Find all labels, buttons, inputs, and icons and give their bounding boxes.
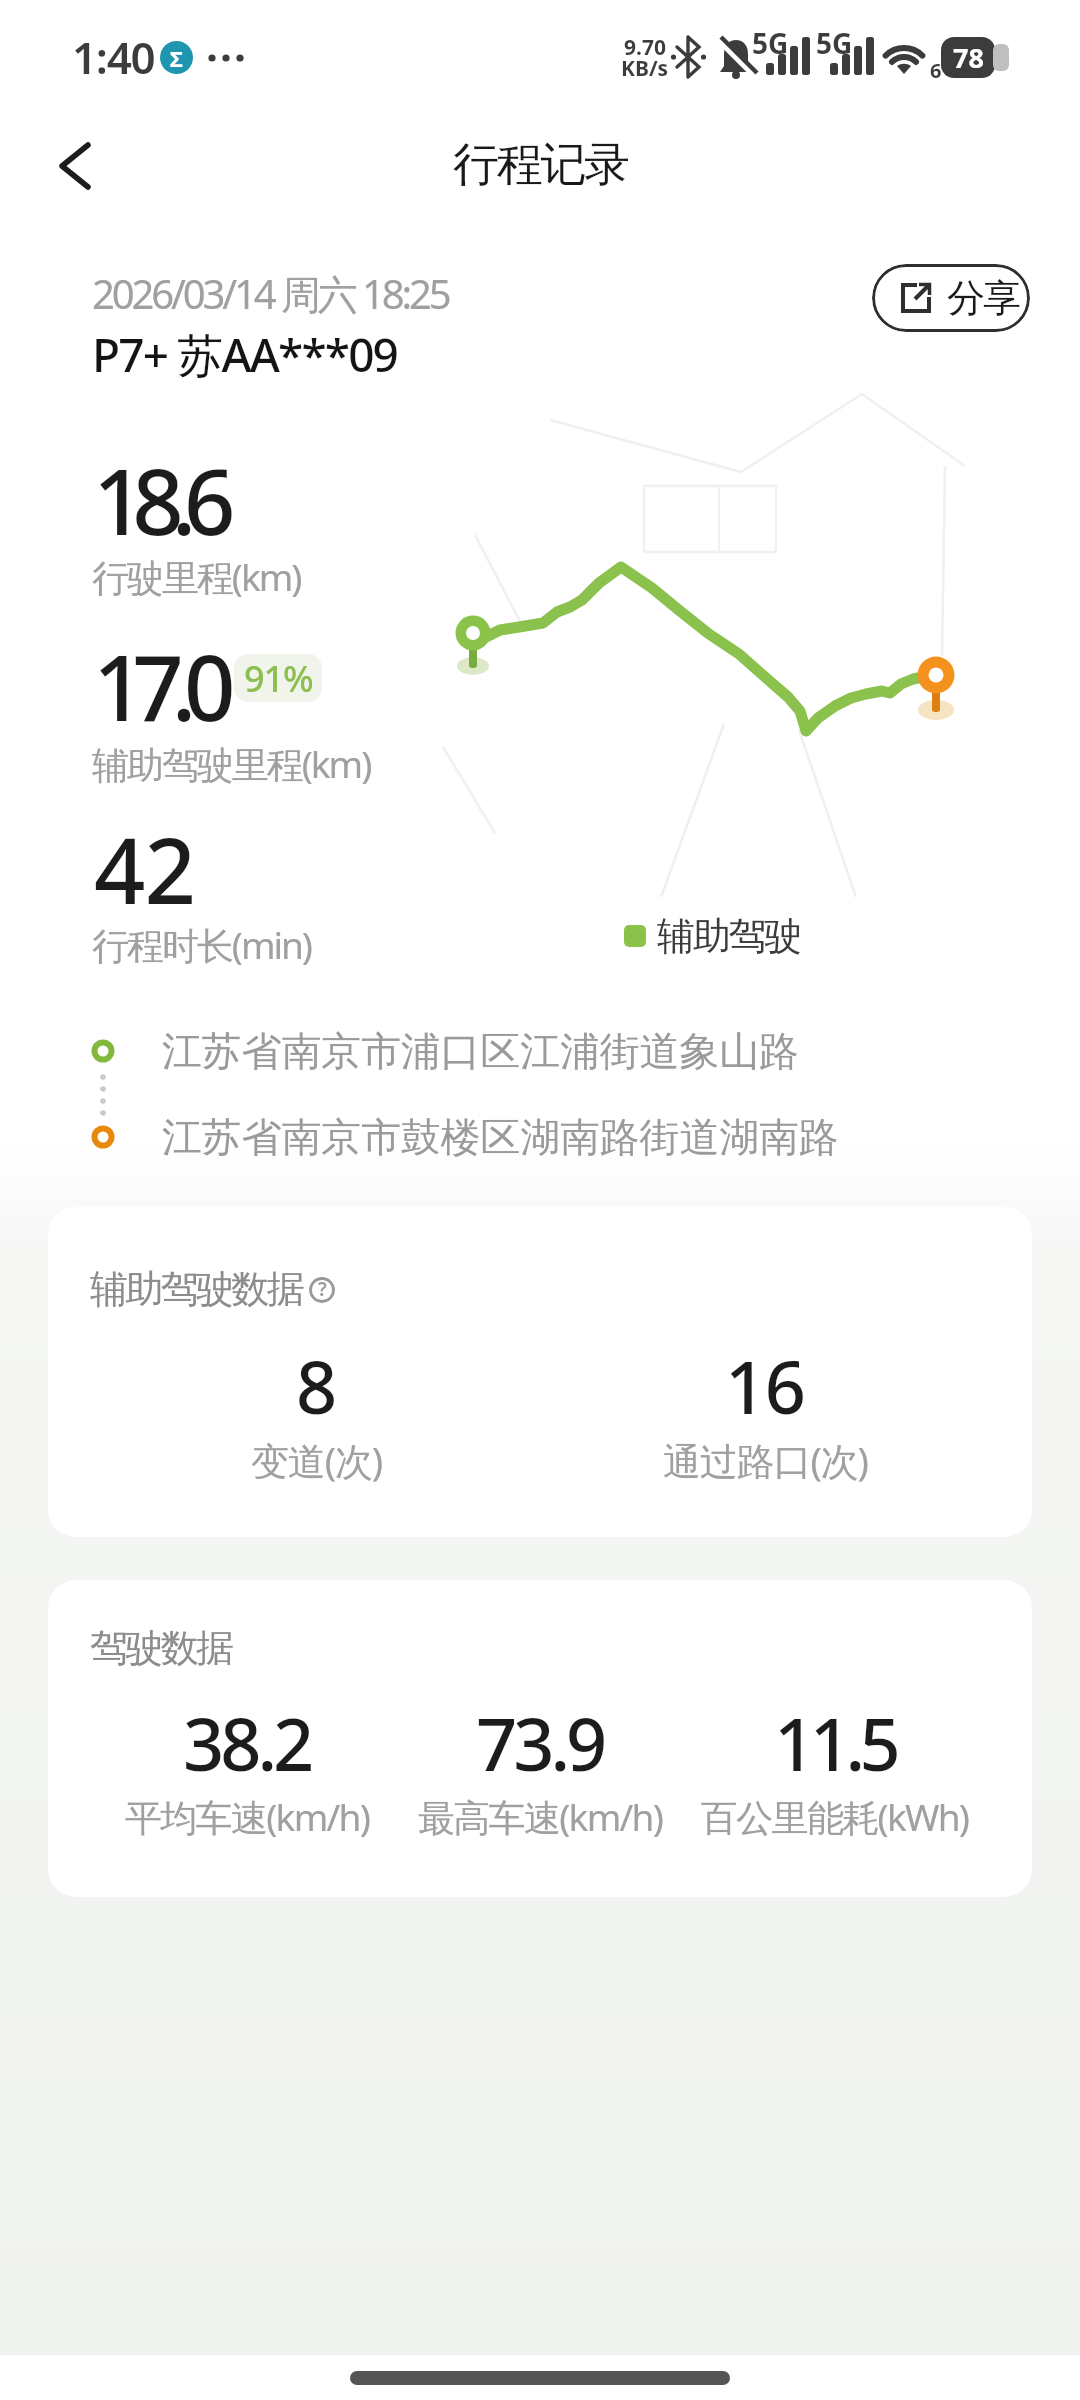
staticText: 平均车速(km/h): [125, 1791, 370, 1842]
staticText: 2026/03/14 周六 18:25: [92, 266, 449, 321]
staticText: 辅助驾驶: [657, 912, 800, 960]
staticText: 最高车速(km/h): [418, 1791, 663, 1842]
staticText: P7+ 苏AA***09: [92, 323, 398, 386]
staticText: 江苏省南京市浦口区江浦街道象山路: [162, 1026, 799, 1076]
staticText: 5G: [752, 24, 789, 62]
staticText: 辅助驾驶里程(km): [92, 738, 371, 789]
staticText: 11.5: [774, 1694, 896, 1792]
staticText: 16: [725, 1337, 805, 1435]
staticText: 变道(次): [251, 1434, 383, 1486]
staticText: 通过路口(次): [663, 1434, 868, 1486]
staticText: 行程记录: [453, 136, 628, 194]
staticText: 5G: [816, 24, 853, 62]
staticText: 江苏省南京市鼓楼区湖南路街道湖南路: [162, 1112, 839, 1162]
staticText: KB/s: [621, 54, 669, 83]
staticText: 行驶里程(km): [92, 551, 301, 602]
staticText: 1:40: [72, 27, 155, 87]
button[interactable]: [302, 1269, 342, 1309]
button[interactable]: 分享: [872, 264, 1030, 332]
staticText: 行程时长(min): [92, 919, 311, 970]
staticText: ?: [318, 1276, 327, 1302]
staticText: 73.9: [476, 1694, 604, 1792]
staticText: 42: [94, 808, 196, 931]
staticText: 分享: [947, 274, 1020, 322]
staticText: Σ: [170, 43, 183, 73]
staticText: 百公里能耗(kWh): [701, 1791, 969, 1842]
staticText: 38.2: [183, 1694, 311, 1792]
staticText: 辅助驾驶数据: [90, 1265, 303, 1313]
staticText: 78: [953, 39, 984, 76]
staticText: 6: [930, 57, 942, 84]
button[interactable]: [40, 125, 120, 205]
staticText: 驾驶数据: [90, 1624, 232, 1672]
staticText: 8: [296, 1337, 338, 1435]
staticText: 18.6: [93, 439, 224, 562]
staticText: 17.0: [93, 625, 224, 748]
staticText: 91%: [244, 654, 313, 702]
staticText: 9.70: [624, 33, 666, 62]
